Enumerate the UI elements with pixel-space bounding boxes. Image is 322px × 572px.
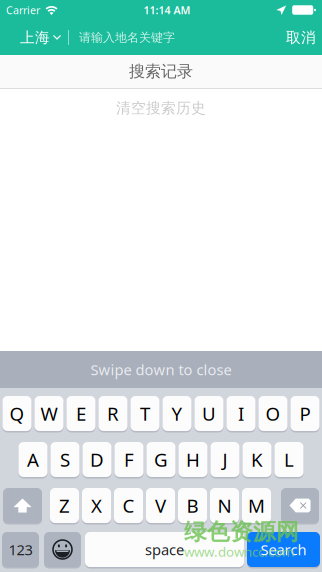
staticText: P bbox=[299, 401, 310, 426]
staticText: L bbox=[284, 447, 294, 472]
button[interactable]: U bbox=[194, 396, 223, 432]
staticText: D bbox=[90, 447, 104, 472]
button[interactable]: Search bbox=[247, 532, 320, 568]
button[interactable]: V bbox=[146, 488, 175, 524]
button[interactable]: I bbox=[226, 396, 255, 432]
staticText: Q bbox=[9, 401, 24, 426]
button[interactable]: M bbox=[242, 488, 271, 524]
button[interactable]: S bbox=[50, 442, 79, 478]
staticText: 清空搜索历史 bbox=[116, 99, 206, 117]
button[interactable]: R bbox=[98, 396, 127, 432]
button[interactable]: A bbox=[18, 442, 47, 478]
staticText: Carrier bbox=[6, 3, 40, 17]
button[interactable]: X bbox=[82, 488, 111, 524]
staticText: K bbox=[251, 447, 263, 472]
staticText: 123 bbox=[8, 540, 32, 559]
staticText: Swipe down to close bbox=[90, 360, 231, 379]
button[interactable]: Delete bbox=[281, 488, 319, 524]
staticText: R bbox=[107, 401, 119, 426]
staticText: 11:14 AM bbox=[144, 3, 191, 17]
staticText: B bbox=[186, 493, 198, 518]
staticText: M bbox=[248, 493, 265, 518]
button[interactable]: Y bbox=[162, 396, 191, 432]
staticText: 绿色资源网 bbox=[184, 518, 299, 546]
button[interactable]: J bbox=[210, 442, 239, 478]
staticText: V bbox=[155, 493, 166, 518]
staticText: F bbox=[124, 447, 134, 472]
staticText: 请输入地名关键字 bbox=[79, 30, 175, 45]
staticText: T bbox=[140, 401, 150, 426]
staticText: 搜索记录 bbox=[129, 62, 193, 81]
button[interactable]: Q bbox=[2, 396, 31, 432]
button[interactable]: B bbox=[178, 488, 207, 524]
staticText: N bbox=[217, 493, 231, 518]
button[interactable]: O bbox=[258, 396, 287, 432]
staticText: W bbox=[40, 401, 57, 426]
staticText: Z bbox=[59, 493, 70, 518]
button[interactable]: D bbox=[82, 442, 111, 478]
button[interactable]: F bbox=[114, 442, 143, 478]
staticText: U bbox=[202, 401, 216, 426]
button[interactable]: 清空搜索历史 bbox=[0, 89, 322, 127]
staticText: H bbox=[186, 447, 200, 472]
staticText: space bbox=[145, 540, 184, 559]
button[interactable]: space bbox=[85, 532, 244, 568]
button[interactable]: 123 bbox=[2, 532, 39, 568]
button[interactable]: 上海 bbox=[0, 20, 68, 55]
staticText: G bbox=[154, 447, 168, 472]
staticText: 取消 bbox=[286, 28, 316, 46]
button[interactable]: Z bbox=[50, 488, 79, 524]
staticText: 上海 bbox=[20, 28, 50, 46]
staticText: C bbox=[122, 493, 134, 518]
button[interactable]: W bbox=[34, 396, 63, 432]
staticText: Y bbox=[171, 401, 182, 426]
button[interactable]: C bbox=[114, 488, 143, 524]
button[interactable]: H bbox=[178, 442, 207, 478]
staticText: Search bbox=[260, 540, 306, 559]
button[interactable]: 取消 bbox=[280, 20, 322, 55]
button[interactable]: Shift bbox=[3, 488, 42, 524]
staticText: A bbox=[27, 447, 39, 472]
button[interactable]: Swipe down to close bbox=[0, 351, 322, 388]
button[interactable]: G bbox=[146, 442, 175, 478]
button[interactable]: P bbox=[290, 396, 319, 432]
button[interactable]: T bbox=[130, 396, 159, 432]
staticText: I bbox=[238, 401, 244, 426]
button[interactable]: E bbox=[66, 396, 95, 432]
button[interactable]: L bbox=[274, 442, 303, 478]
button[interactable]: Emoji bbox=[44, 532, 81, 568]
staticText: S bbox=[60, 447, 70, 472]
staticText: www.downcc.com bbox=[184, 543, 294, 560]
staticText: E bbox=[76, 401, 86, 426]
staticText: X bbox=[91, 493, 102, 518]
staticText: J bbox=[222, 447, 227, 472]
staticText: O bbox=[265, 401, 280, 426]
button[interactable]: N bbox=[210, 488, 239, 524]
button[interactable]: K bbox=[242, 442, 271, 478]
